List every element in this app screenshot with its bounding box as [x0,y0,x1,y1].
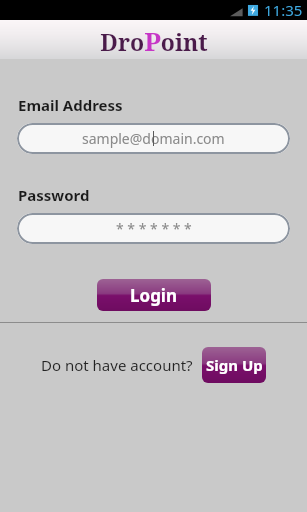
staticText: Password [18,185,90,205]
staticText: * * * * * * * [116,219,192,238]
button[interactable]: Login [97,279,211,311]
staticText: DroPoint [100,23,208,58]
button[interactable]: sample@domain.com [17,123,290,154]
staticText: Sign Up [206,355,263,375]
staticText: Do not have account? [41,355,193,375]
staticText: 11:35 [264,0,303,20]
staticText: Email Address [18,95,123,115]
button[interactable]: * * * * * * * [17,213,290,244]
button[interactable]: Sign Up [202,347,266,383]
staticText: Login [130,284,178,307]
staticText: sample@domain.com [82,129,225,148]
